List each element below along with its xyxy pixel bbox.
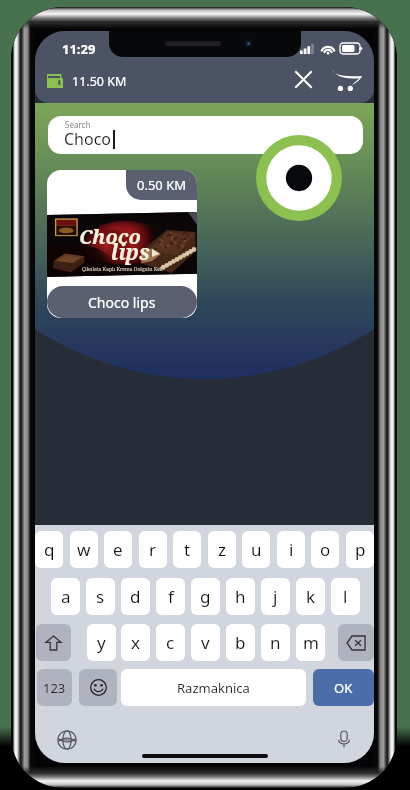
- button[interactable]: r: [139, 531, 167, 568]
- staticText: m: [303, 631, 319, 654]
- button[interactable]: 11.50 KM: [47, 66, 127, 96]
- button[interactable]: h: [226, 578, 255, 615]
- button[interactable]: p: [346, 531, 374, 568]
- staticText: 11:29: [62, 40, 96, 58]
- button[interactable]: l: [331, 578, 360, 615]
- staticText: e: [113, 538, 123, 561]
- staticText: r: [149, 538, 157, 561]
- staticText: k: [306, 585, 316, 608]
- staticText: 0.50 KM: [137, 176, 187, 194]
- staticText: d: [130, 585, 141, 608]
- staticText: Razmaknica: [177, 679, 250, 697]
- button[interactable]: Language: [52, 725, 82, 755]
- button[interactable]: Cart: [325, 62, 369, 99]
- button[interactable]: w: [70, 531, 98, 568]
- button[interactable]: f: [156, 578, 185, 615]
- button[interactable]: Close: [283, 59, 323, 99]
- button[interactable]: n: [261, 624, 290, 661]
- staticText: Choco: [79, 223, 141, 250]
- staticText: o: [320, 538, 331, 561]
- staticText: z: [218, 538, 226, 561]
- button[interactable]: OK: [313, 669, 374, 706]
- staticText: n: [270, 631, 281, 654]
- staticText: OK: [334, 679, 353, 697]
- staticText: b: [235, 631, 246, 654]
- button[interactable]: e: [104, 531, 132, 568]
- button[interactable]: i: [277, 531, 305, 568]
- button[interactable]: Razmaknica: [121, 669, 306, 706]
- button[interactable]: Voice input: [329, 725, 359, 755]
- button[interactable]: Shift: [36, 624, 71, 661]
- button[interactable]: 123: [37, 669, 72, 706]
- button[interactable]: v: [191, 624, 220, 661]
- staticText: c: [166, 631, 175, 654]
- staticText: i: [289, 538, 294, 561]
- button[interactable]: d: [121, 578, 150, 615]
- staticText: h: [235, 585, 246, 608]
- staticText: s: [96, 585, 105, 608]
- staticText: 123: [43, 679, 66, 697]
- staticText: Search: [65, 119, 91, 130]
- button[interactable]: x: [121, 624, 150, 661]
- staticText: y: [97, 631, 106, 654]
- staticText: l: [343, 585, 348, 608]
- staticText: a: [61, 585, 71, 608]
- staticText: f: [168, 585, 174, 608]
- button[interactable]: Backspace: [338, 624, 374, 661]
- button[interactable]: a: [51, 578, 80, 615]
- staticText: g: [200, 585, 211, 608]
- button[interactable]: z: [208, 531, 236, 568]
- button[interactable]: Search: [48, 116, 363, 154]
- staticText: Choco lips: [88, 293, 156, 312]
- staticText: w: [77, 538, 91, 561]
- button[interactable]: Choco: [47, 170, 197, 318]
- staticText: Choco: [64, 128, 112, 150]
- button[interactable]: b: [226, 624, 255, 661]
- staticText: x: [131, 631, 140, 654]
- staticText: j: [273, 585, 278, 608]
- button[interactable]: c: [156, 624, 185, 661]
- staticText: lips: [111, 238, 150, 267]
- button[interactable]: k: [296, 578, 325, 615]
- button[interactable]: s: [86, 578, 115, 615]
- button[interactable]: u: [242, 531, 270, 568]
- button[interactable]: t: [173, 531, 201, 568]
- staticText: t: [184, 538, 191, 561]
- staticText: v: [201, 631, 210, 654]
- staticText: Çikolata Kaplı Krema Dolgulu Kek: [82, 266, 163, 273]
- button[interactable]: q: [35, 531, 63, 568]
- button[interactable]: g: [191, 578, 220, 615]
- button[interactable]: Emoji: [79, 669, 117, 706]
- button[interactable]: m: [296, 624, 325, 661]
- staticText: q: [44, 538, 55, 561]
- button[interactable]: j: [261, 578, 290, 615]
- button[interactable]: y: [87, 624, 116, 661]
- staticText: u: [251, 538, 262, 561]
- staticText: p: [355, 538, 366, 561]
- staticText: 11.50 KM: [72, 73, 127, 90]
- button[interactable]: o: [311, 531, 339, 568]
